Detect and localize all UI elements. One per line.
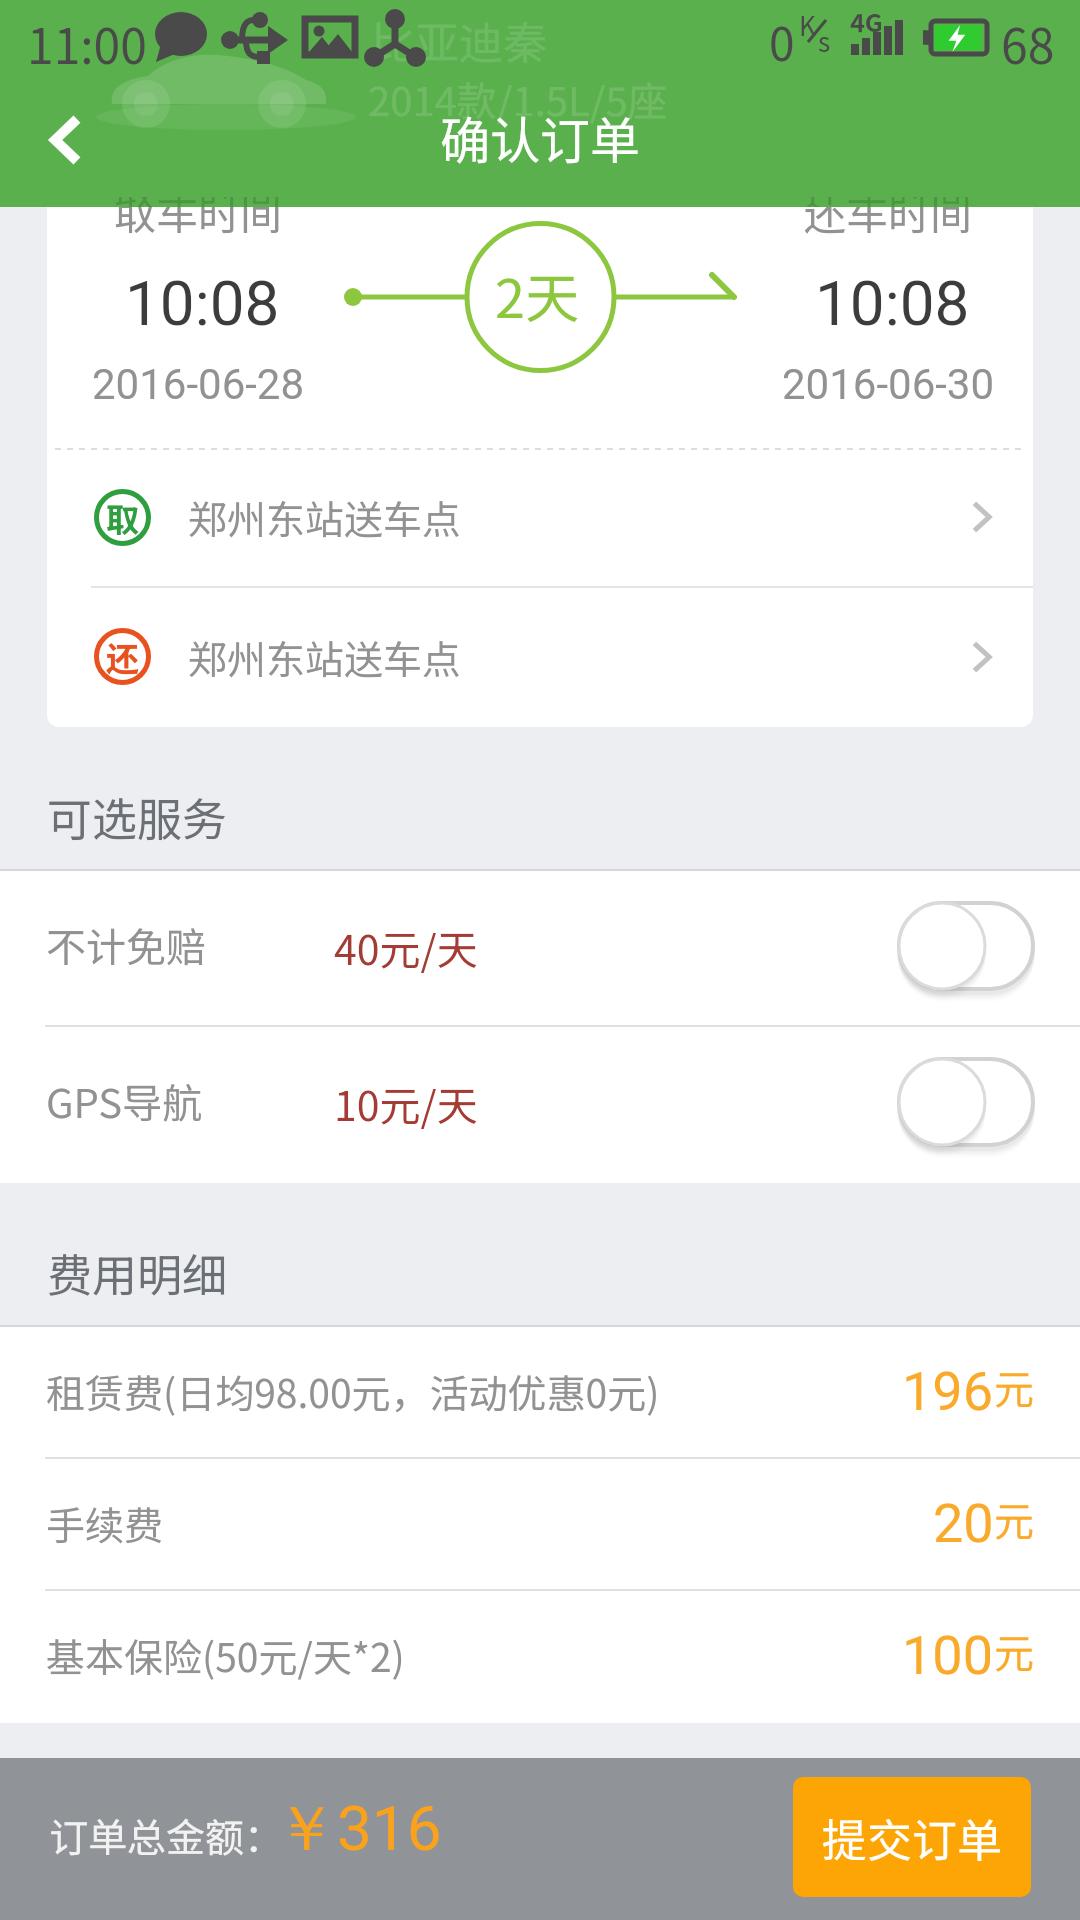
button[interactable]: 取: [47, 448, 1033, 586]
staticText: 还: [106, 633, 139, 681]
staticText: 元: [994, 1358, 1034, 1416]
staticText: 40元/天: [334, 917, 478, 976]
button[interactable]: GPS导航: [0, 1027, 1080, 1183]
staticText: K: [799, 6, 816, 44]
staticText: 2016-06-28: [92, 360, 305, 409]
staticText: 10元/天: [334, 1073, 478, 1132]
staticText: ￥316: [275, 1790, 442, 1868]
staticText: 11:00: [27, 8, 147, 78]
staticText: 68: [1001, 8, 1055, 78]
staticText: 10:08: [125, 267, 280, 340]
staticText: 0: [769, 8, 795, 75]
staticText: 20: [933, 1492, 994, 1555]
staticText: 元: [994, 1622, 1034, 1680]
staticText: 取车时间: [114, 197, 283, 207]
staticText: 2014款/1.5L/5座: [368, 70, 668, 128]
staticText: 2天: [495, 255, 579, 333]
staticText: 2016-06-30: [782, 360, 995, 409]
staticText: 还车时间: [804, 197, 973, 242]
staticText: 取车时间: [114, 197, 283, 242]
staticText: 取: [106, 494, 139, 542]
staticText: 4G: [850, 3, 883, 39]
button[interactable]: 不计免赔: [0, 871, 1080, 1027]
staticText: 100: [902, 1624, 994, 1687]
staticText: 还车时间: [804, 197, 973, 207]
staticText: 郑州东站送车点: [188, 629, 462, 685]
button[interactable]: 还: [47, 586, 1033, 727]
staticText: 手续费: [46, 1495, 164, 1551]
staticText: 比亚迪秦: [371, 8, 547, 72]
button[interactable]: 提交订单: [793, 1777, 1031, 1897]
staticText: s: [818, 22, 831, 60]
staticText: 10:08: [815, 267, 970, 340]
staticText: 确认订单: [440, 101, 640, 173]
staticText: 提交订单: [822, 1805, 1003, 1870]
staticText: 可选服务: [47, 784, 228, 849]
staticText: 租赁费(日均98.00元，活动优惠0元): [46, 1363, 660, 1419]
staticText: 基本保险(50元/天*2): [46, 1627, 405, 1683]
staticText: 郑州东站送车点: [188, 489, 462, 545]
staticText: GPS导航: [46, 1072, 203, 1130]
button[interactable]: Back: [0, 80, 130, 207]
staticText: 费用明细: [47, 1240, 228, 1305]
staticText: 订单总金额：: [49, 1807, 284, 1863]
staticText: 元: [994, 1490, 1034, 1548]
staticText: 不计免赔: [46, 916, 206, 974]
staticText: 196: [902, 1360, 994, 1423]
